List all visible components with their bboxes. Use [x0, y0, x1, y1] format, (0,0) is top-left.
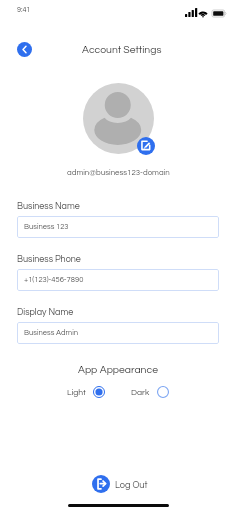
staticText: Business Phone [17, 255, 81, 264]
button[interactable]: Dark [131, 386, 169, 398]
staticText: Display Name [17, 308, 74, 317]
staticText: Dark [131, 388, 150, 397]
staticText: Business Name [17, 202, 80, 211]
staticText: Business 123 [24, 223, 69, 231]
staticText: Business Admin [24, 329, 78, 337]
staticText: 9:41 [17, 6, 31, 13]
staticText: Log Out [115, 480, 148, 489]
button[interactable]: +1(123)-456-7890 [17, 269, 219, 291]
button[interactable]: Business 123 [17, 216, 219, 238]
staticText: +1(123)-456-7890 [24, 276, 84, 284]
button[interactable]: Back [17, 42, 32, 57]
button[interactable]: Light [67, 386, 105, 398]
button[interactable]: Profile photo [83, 83, 154, 154]
staticText: Account Settings [82, 44, 162, 55]
button[interactable]: Log Out [92, 475, 148, 493]
button[interactable]: Edit photo [137, 137, 155, 155]
button[interactable]: Business Admin [17, 322, 219, 344]
staticText: admin@business123-domain [67, 169, 170, 177]
staticText: App Appearance [78, 364, 158, 375]
staticText: Light [67, 388, 86, 397]
